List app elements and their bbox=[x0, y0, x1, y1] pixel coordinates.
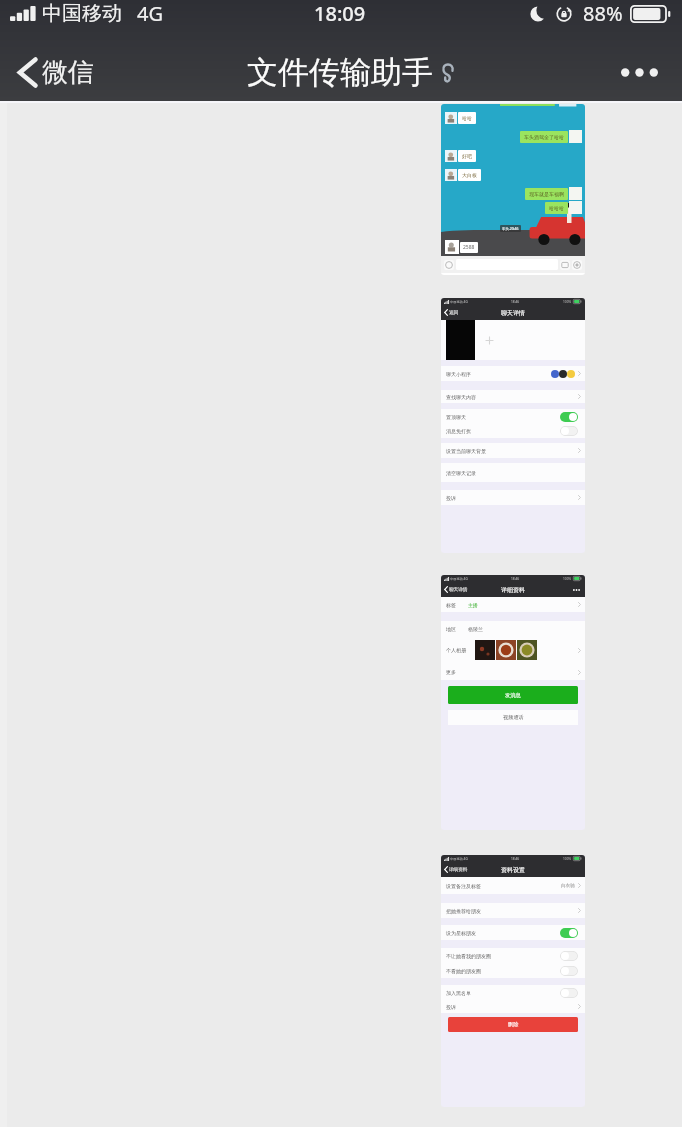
button[interactable]: 设置备注及标签 bbox=[441, 877, 585, 894]
staticText: 车头.20:46 bbox=[502, 226, 519, 231]
button[interactable]: 置顶聊天 bbox=[560, 412, 578, 422]
staticText: 中国移动 bbox=[42, 1, 122, 26]
staticText: 置顶聊天 bbox=[446, 414, 466, 420]
staticText: 设为星标朋友 bbox=[446, 930, 476, 936]
staticText: 清空聊天记录 bbox=[446, 470, 476, 476]
staticText: 聊天小程序 bbox=[446, 371, 471, 377]
button[interactable]: 标签 bbox=[441, 597, 585, 612]
staticText: 中国移动 4G bbox=[450, 300, 468, 304]
button[interactable]: 把她推荐给朋友 bbox=[441, 903, 585, 918]
staticText: 100% bbox=[563, 300, 572, 304]
staticText: 18:46 bbox=[511, 577, 520, 581]
button[interactable]: 哈哈 bbox=[441, 104, 585, 275]
button[interactable]: 清空聊天记录 bbox=[441, 463, 585, 482]
button[interactable]: 加入黑名单 bbox=[441, 985, 585, 1000]
staticText: 2588 bbox=[463, 244, 475, 251]
button[interactable]: More options bbox=[611, 58, 668, 87]
staticText: 不看她的朋友圈 bbox=[446, 968, 481, 974]
staticText: 格陵兰 bbox=[468, 626, 483, 632]
button[interactable]: 视频通话 bbox=[448, 710, 578, 725]
button[interactable]: 查找聊天内容 bbox=[441, 390, 585, 403]
staticText: 不让她看我的朋友圈 bbox=[446, 953, 491, 959]
button[interactable]: 不让她看我的朋友圈 bbox=[560, 951, 578, 961]
button[interactable]: 设为星标朋友 bbox=[441, 925, 585, 940]
button[interactable]: 中国移动 4G bbox=[441, 855, 585, 1107]
button[interactable]: 不看她的朋友圈 bbox=[441, 963, 585, 978]
staticText: 白衣驰 bbox=[561, 883, 575, 889]
button[interactable]: 投诉 bbox=[441, 1000, 585, 1013]
button[interactable]: 更多 bbox=[441, 664, 585, 680]
staticText: 视频通话 bbox=[503, 714, 524, 721]
staticText: 18:09 bbox=[314, 0, 366, 27]
staticText: 删除 bbox=[508, 1021, 519, 1028]
staticText: 地区 bbox=[446, 626, 456, 632]
staticText: 发消息 bbox=[505, 692, 521, 699]
button[interactable]: 聊天小程序 bbox=[441, 366, 585, 381]
staticText: 查找聊天内容 bbox=[446, 394, 476, 400]
button[interactable]: 投诉 bbox=[441, 490, 585, 505]
staticText: 把她推荐给朋友 bbox=[446, 908, 481, 914]
staticText: 18:46 bbox=[511, 300, 520, 304]
staticText: 100% bbox=[563, 857, 572, 861]
staticText: 车头酒驾全了哈哈 bbox=[524, 134, 564, 140]
staticText: 消息免打扰 bbox=[446, 428, 471, 434]
staticText: 微信 bbox=[42, 56, 94, 89]
staticText: 详细资料 bbox=[501, 586, 525, 594]
staticText: 哈哈 bbox=[462, 115, 472, 121]
staticText: 加入黑名单 bbox=[446, 990, 471, 996]
button[interactable]: 中国移动 4G bbox=[441, 575, 585, 830]
button[interactable]: 删除 bbox=[448, 1017, 578, 1032]
button[interactable]: Back to 微信 bbox=[10, 48, 102, 97]
staticText: 详细资料 bbox=[449, 867, 468, 873]
staticText: 主播 bbox=[468, 602, 478, 608]
staticText: 文件传输助手 bbox=[247, 53, 433, 92]
button[interactable]: 置顶聊天 bbox=[441, 409, 585, 424]
staticText: 设置备注及标签 bbox=[446, 883, 481, 889]
button[interactable]: 加入黑名单 bbox=[560, 988, 578, 998]
staticText: 18:46 bbox=[511, 857, 520, 861]
staticText: 标签 bbox=[446, 602, 456, 608]
staticText: 好吧 bbox=[462, 153, 472, 159]
staticText: 100% bbox=[563, 577, 572, 581]
button[interactable]: 设置当前聊天背景 bbox=[441, 443, 585, 458]
staticText: 4G bbox=[137, 0, 163, 27]
staticText: 现车就是车福啊 bbox=[529, 191, 564, 197]
staticText: 哈哈哈 bbox=[549, 205, 564, 211]
button[interactable]: 消息免打扰 bbox=[441, 424, 585, 438]
button[interactable]: 不让她看我的朋友圈 bbox=[441, 948, 585, 963]
button[interactable]: 发消息 bbox=[448, 686, 578, 704]
staticText: 投诉 bbox=[446, 495, 456, 501]
button[interactable]: 中国移动 4G bbox=[441, 298, 585, 553]
staticText: 设置当前聊天背景 bbox=[446, 448, 486, 454]
staticText: 88% bbox=[583, 0, 623, 27]
button[interactable]: 不看她的朋友圈 bbox=[560, 966, 578, 976]
staticText: 中国移动 4G bbox=[450, 857, 468, 861]
staticText: 中国移动 4G bbox=[450, 577, 468, 581]
button[interactable]: 消息免打扰 bbox=[560, 426, 578, 436]
staticText: 大白板 bbox=[462, 172, 477, 178]
staticText: 投诉 bbox=[446, 1004, 456, 1010]
staticText: 聊天详情 bbox=[501, 309, 525, 317]
staticText: 返回 bbox=[449, 310, 459, 316]
staticText: 更多 bbox=[446, 669, 456, 675]
staticText: 个人相册 bbox=[446, 647, 466, 653]
staticText: 聊天详情 bbox=[449, 587, 468, 593]
staticText: 资料设置 bbox=[501, 866, 525, 874]
button[interactable]: 设为星标朋友 bbox=[560, 928, 578, 938]
